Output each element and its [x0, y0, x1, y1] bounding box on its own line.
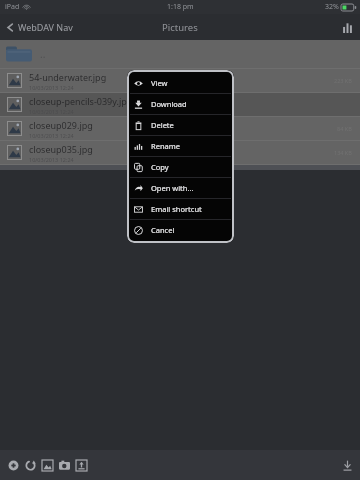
staticText: Rename [151, 141, 180, 151]
staticText: closeup-pencils-039y.jpg [29, 95, 133, 107]
staticText: WebDAV Nav [18, 21, 73, 33]
staticText: 134 KB [334, 149, 352, 156]
button[interactable]: Sort [335, 18, 360, 37]
button[interactable]: View [127, 73, 234, 93]
staticText: Copy [151, 162, 169, 172]
staticText: 10/03/2013 12:24 [29, 156, 74, 163]
button[interactable]: 54-underwater.jpg [0, 69, 360, 92]
button[interactable]: Camera [56, 455, 73, 476]
staticText: closeup035.jpg [29, 143, 93, 155]
staticText: closeup029.jpg [29, 119, 93, 131]
button[interactable]: closeup-pencils-039y.jpg [0, 93, 360, 116]
button[interactable]: Download [335, 455, 360, 476]
button[interactable]: WebDAV Nav [0, 17, 79, 37]
staticText: 10/03/2013 12:24 [29, 132, 74, 139]
staticText: 84 KB [337, 125, 352, 132]
button[interactable]: closeup029.jpg [0, 117, 360, 140]
button[interactable]: Cancel [127, 220, 234, 240]
staticText: Cancel [151, 225, 175, 235]
button[interactable]: Email shortcut [127, 199, 234, 219]
staticText: Delete [151, 120, 174, 130]
button[interactable]: Download [127, 94, 234, 114]
staticText: Download [151, 99, 187, 109]
button[interactable]: Photos [39, 455, 56, 476]
button[interactable]: closeup035.jpg [0, 141, 360, 164]
staticText: View [151, 78, 168, 88]
button[interactable]: Rename [127, 136, 234, 156]
staticText: 32% [325, 2, 339, 12]
button[interactable]: Delete [127, 115, 234, 135]
button[interactable]: Add [5, 455, 22, 476]
staticText: Open with... [151, 183, 194, 193]
staticText: 223 KB [334, 77, 352, 84]
staticText: iPad [5, 2, 20, 12]
button[interactable]: Open with... [127, 178, 234, 198]
button[interactable]: Upload [73, 455, 90, 476]
staticText: 10/03/2013 12:24 [29, 84, 74, 91]
button[interactable]: Refresh [22, 455, 39, 476]
button[interactable]: .. [0, 40, 360, 68]
staticText: Pictures [162, 21, 198, 34]
button[interactable]: Copy [127, 157, 234, 177]
staticText: Email shortcut [151, 204, 202, 214]
staticText: 1:18 pm [167, 2, 194, 12]
staticText: 54-underwater.jpg [29, 71, 107, 83]
